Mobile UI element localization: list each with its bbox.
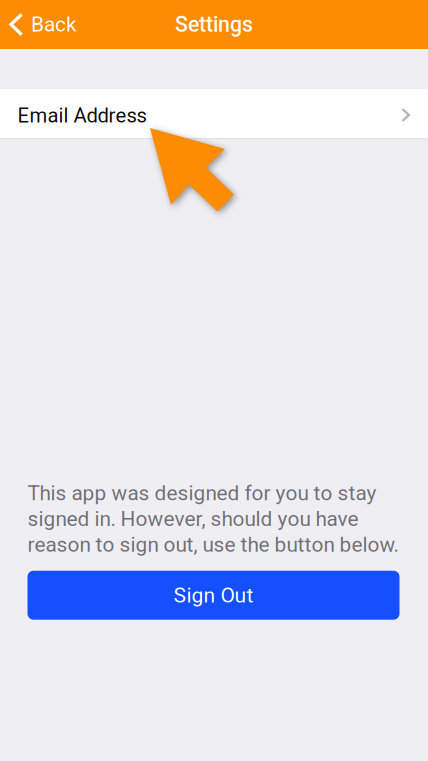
button[interactable]: Email Address (0, 89, 428, 138)
staticText: signed in. However, should you have (27, 507, 358, 531)
staticText: reason to sign out, use the button below… (27, 532, 398, 557)
button[interactable]: Sign Out (27, 571, 399, 620)
staticText: Back (31, 12, 77, 37)
button[interactable]: Back (0, 0, 87, 49)
staticText: Settings (175, 12, 253, 37)
staticText: Sign Out (173, 583, 253, 608)
staticText: Email Address (17, 104, 146, 127)
staticText: This app was designed for you to stay (27, 481, 376, 505)
